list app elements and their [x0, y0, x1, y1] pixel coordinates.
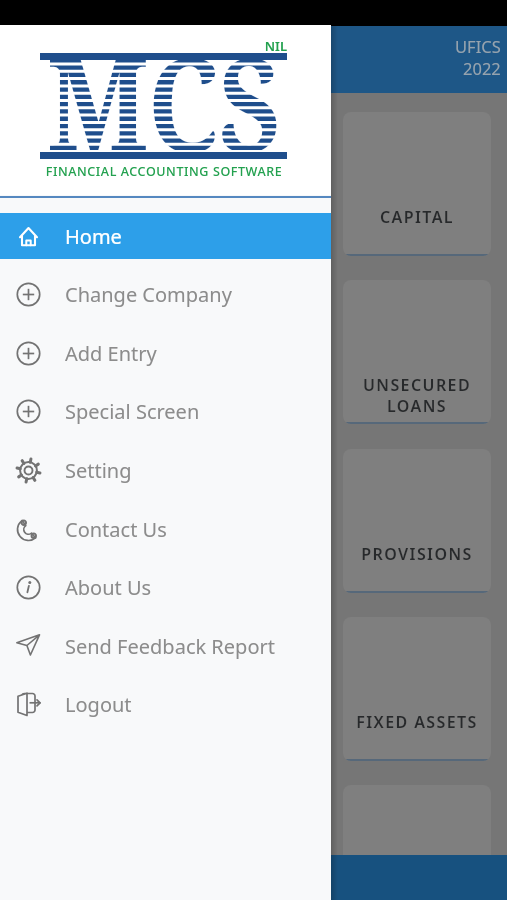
staticText: UFICS: [455, 35, 501, 57]
staticText: Change Company: [65, 281, 232, 308]
staticText: Contact Us: [65, 516, 167, 543]
staticText: PROVISIONS: [343, 543, 491, 565]
button[interactable]: Contact Us: [0, 508, 331, 550]
button[interactable]: CAPITAL: [343, 112, 491, 256]
button[interactable]: Home: [0, 213, 331, 259]
button[interactable]: About Us: [0, 566, 331, 608]
staticText: Send Feedback Report: [65, 633, 275, 660]
staticText: UNSECURED LOANS: [343, 374, 491, 417]
staticText: Logout: [65, 691, 132, 718]
button[interactable]: Setting: [0, 449, 331, 491]
staticText: NIL: [255, 37, 287, 55]
staticText: CAPITAL: [343, 206, 491, 228]
staticText: Setting: [65, 457, 132, 484]
staticText: FINANCIAL ACCOUNTING SOFTWARE: [38, 163, 290, 180]
button[interactable]: Special Screen: [0, 390, 331, 432]
staticText: About Us: [65, 574, 152, 601]
staticText: Home: [65, 223, 122, 250]
button[interactable]: Change Company: [0, 273, 331, 315]
staticText: FIXED ASSETS: [343, 711, 491, 733]
button[interactable]: [0, 855, 507, 900]
staticText: Special Screen: [65, 398, 200, 425]
button[interactable]: PROVISIONS: [343, 449, 491, 593]
staticText: 2022: [463, 57, 501, 79]
button[interactable]: Send Feedback Report: [0, 625, 331, 667]
button[interactable]: UNSECURED LOANS: [343, 280, 491, 424]
staticText: MCS: [47, 14, 280, 160]
button[interactable]: Logout: [0, 683, 331, 725]
button[interactable]: Add Entry: [0, 332, 331, 374]
staticText: Add Entry: [65, 340, 157, 367]
button[interactable]: FIXED ASSETS: [343, 617, 491, 761]
button[interactable]: [343, 785, 491, 900]
